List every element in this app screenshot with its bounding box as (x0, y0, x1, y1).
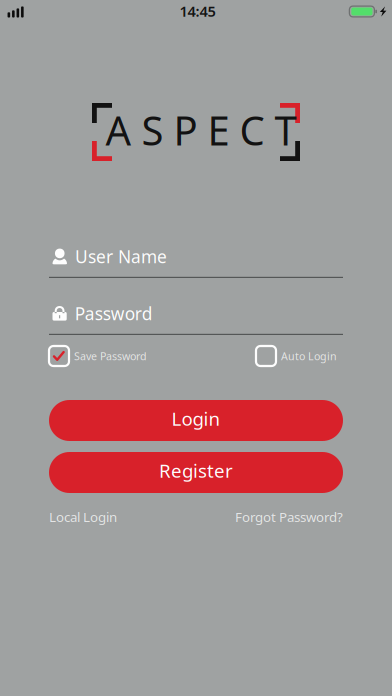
staticText: Save Password (74, 349, 147, 363)
staticText: Local Login (49, 508, 117, 526)
staticText: ASPECT (105, 103, 296, 156)
button[interactable]: Forgot Password? (235, 508, 343, 526)
staticText: User Name (75, 245, 167, 268)
staticText: Password (75, 302, 153, 325)
staticText: 14:45 (179, 1, 215, 21)
button[interactable]: Login (49, 400, 343, 441)
button[interactable]: Save Password (49, 346, 147, 366)
button[interactable]: Local Login (49, 508, 117, 526)
staticText: Auto Login (281, 349, 337, 363)
button[interactable]: Auto Login (256, 346, 343, 366)
button[interactable]: Register (49, 452, 343, 493)
staticText: Register (159, 458, 233, 483)
staticText: Forgot Password? (235, 508, 343, 526)
staticText: Login (171, 406, 220, 431)
